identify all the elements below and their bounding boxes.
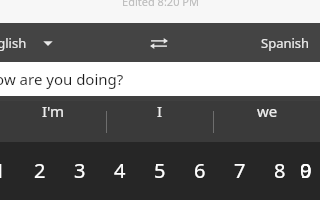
staticText: 3 (74, 157, 86, 184)
button[interactable]: we (214, 101, 320, 121)
staticText: Spanish (261, 34, 310, 52)
button[interactable]: How are you doing? (0, 62, 320, 96)
staticText: 6 (194, 157, 206, 184)
staticText: 2 (34, 157, 46, 184)
button[interactable]: Spanish (251, 23, 320, 62)
button[interactable]: 8 (260, 142, 300, 199)
staticText: I (157, 101, 163, 121)
staticText: English (0, 34, 27, 52)
button[interactable]: 6 (180, 142, 220, 199)
button[interactable]: 1 (0, 142, 20, 199)
button[interactable]: 2 (20, 142, 60, 199)
button[interactable]: 5 (140, 142, 180, 199)
button[interactable]: English (0, 23, 65, 62)
staticText: I'm (42, 101, 65, 121)
button[interactable]: I (107, 101, 213, 121)
staticText: Edited 8:20 PM (122, 0, 199, 9)
staticText: we (257, 101, 278, 121)
staticText: How are you doing? (0, 69, 124, 89)
staticText: 8 (274, 157, 286, 184)
button[interactable]: 7 (220, 142, 260, 199)
button[interactable]: 4 (100, 142, 140, 199)
staticText: 5 (154, 157, 166, 184)
staticText: 7 (234, 157, 246, 184)
staticText: 4 (114, 157, 126, 184)
button[interactable]: Swap languages (142, 26, 176, 60)
staticText: 1 (0, 157, 6, 184)
button[interactable]: 3 (60, 142, 100, 199)
button[interactable]: I'm (0, 101, 106, 121)
